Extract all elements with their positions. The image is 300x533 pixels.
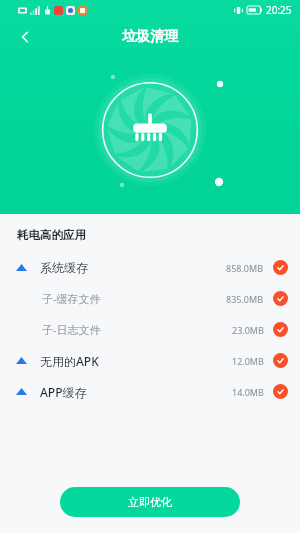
button[interactable]: 无用的APK <box>0 345 300 376</box>
staticText: 子-日志文件 <box>42 322 101 337</box>
button[interactable]: 系统缓存 <box>0 252 300 283</box>
staticText: 子-缓存文件 <box>42 291 101 306</box>
button[interactable]: 立即优化 <box>60 487 240 517</box>
staticText: 23.0MB <box>232 324 264 336</box>
button[interactable]: 子-缓存文件 <box>0 283 300 314</box>
button[interactable]: APP缓存 <box>0 376 300 407</box>
staticText: 835.0MB <box>226 293 264 305</box>
button[interactable]: Selected <box>273 291 288 306</box>
staticText: 20:25 <box>266 3 292 17</box>
staticText: 立即优化 <box>128 495 172 509</box>
button[interactable]: Selected <box>273 384 288 399</box>
staticText: 858.0MB <box>226 262 264 274</box>
button[interactable]: Selected <box>273 260 288 275</box>
staticText: 无用的APK <box>40 353 99 369</box>
button[interactable]: Selected <box>273 353 288 368</box>
button[interactable]: 子-日志文件 <box>0 314 300 345</box>
button[interactable]: Back <box>10 22 40 52</box>
staticText: 12.0MB <box>232 355 264 367</box>
button[interactable]: Selected <box>273 322 288 337</box>
staticText: 垃圾清理 <box>122 28 178 46</box>
staticText: 耗电高的应用 <box>17 228 86 242</box>
staticText: 14.0MB <box>232 386 264 398</box>
staticText: 系统缓存 <box>40 260 88 275</box>
staticText: APP缓存 <box>40 384 87 400</box>
